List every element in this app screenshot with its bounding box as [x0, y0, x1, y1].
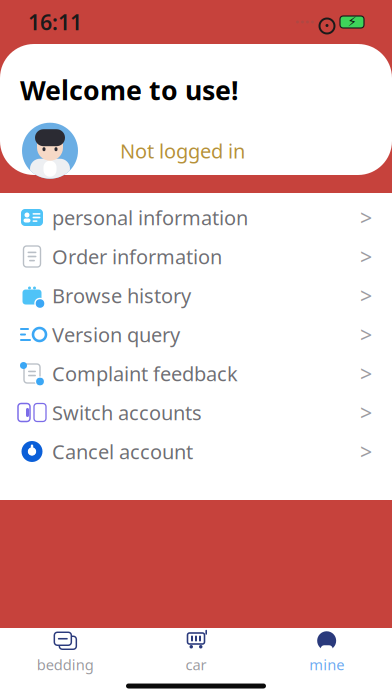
staticText: car: [185, 655, 206, 674]
staticText: >: [360, 398, 372, 427]
staticText: ⚡︎: [347, 14, 356, 29]
staticText: mine: [309, 655, 344, 674]
staticText: Browse history: [52, 282, 191, 309]
button[interactable]: Switch accounts: [0, 393, 392, 432]
button[interactable]: personal information: [0, 198, 392, 237]
button[interactable]: Order information: [0, 237, 392, 276]
staticText: 16:11: [28, 8, 82, 36]
staticText: Order information: [52, 243, 222, 270]
button[interactable]: bedding: [0, 628, 131, 676]
button[interactable]: Version query: [0, 315, 392, 354]
button[interactable]: Cancel account: [0, 432, 392, 471]
staticText: Complaint feedback: [52, 360, 238, 387]
staticText: >: [360, 203, 372, 232]
staticText: Not logged in: [120, 137, 245, 164]
button[interactable]: Browse history: [0, 276, 392, 315]
staticText: bedding: [37, 655, 94, 674]
button[interactable]: Complaint feedback: [0, 354, 392, 393]
staticText: Welcome to use!: [20, 72, 239, 108]
staticText: >: [360, 437, 372, 466]
staticText: >: [360, 242, 372, 271]
staticText: Switch accounts: [52, 399, 202, 426]
button[interactable]: car: [131, 628, 261, 676]
staticText: personal information: [52, 204, 248, 231]
button[interactable]: mine: [261, 628, 392, 676]
staticText: >: [360, 281, 372, 310]
staticText: Version query: [52, 321, 180, 348]
staticText: >: [360, 359, 372, 388]
staticText: >: [360, 320, 372, 349]
staticText: Cancel account: [52, 438, 193, 465]
